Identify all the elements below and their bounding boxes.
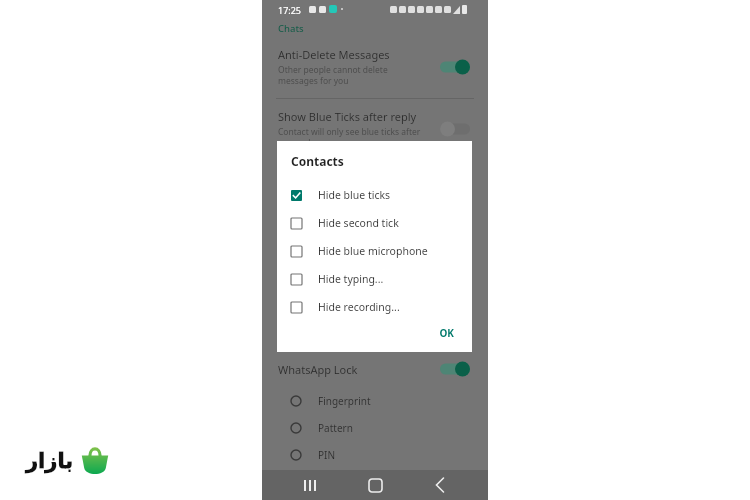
button[interactable]: Hide blue microphone bbox=[277, 237, 472, 265]
button[interactable]: Hide typing... bbox=[277, 265, 472, 293]
button[interactable]: WhatsApp Lock bbox=[262, 360, 488, 378]
staticText: PIN bbox=[318, 448, 336, 462]
button[interactable]: Back bbox=[423, 470, 457, 500]
staticText: Contact will only see blue ticks after y… bbox=[278, 126, 421, 148]
button[interactable]: Toggle on bbox=[438, 58, 472, 76]
staticText: Show Blue Ticks after reply bbox=[278, 109, 417, 124]
staticText: Contacts bbox=[291, 153, 344, 169]
button[interactable]: Toggle off bbox=[438, 120, 472, 138]
staticText: بازار bbox=[26, 449, 74, 473]
staticText: WhatsApp Lock bbox=[278, 362, 438, 377]
staticText: OK bbox=[439, 326, 454, 340]
button[interactable]: Fingerprint bbox=[262, 394, 488, 408]
staticText: Other people cannot delete messages for … bbox=[278, 64, 388, 86]
button[interactable]: Hide recording... bbox=[277, 293, 472, 321]
button[interactable]: PIN bbox=[262, 448, 488, 462]
staticText: Pattern bbox=[318, 421, 353, 435]
button[interactable]: OK bbox=[431, 322, 462, 344]
staticText: Fingerprint bbox=[318, 394, 371, 408]
button[interactable]: Toggle on bbox=[438, 360, 472, 378]
staticText: Hide blue ticks bbox=[318, 188, 391, 202]
staticText: Hide typing... bbox=[318, 272, 384, 286]
button[interactable]: Recents bbox=[293, 470, 327, 500]
staticText: Chats bbox=[278, 22, 304, 35]
button[interactable]: Hide second tick bbox=[277, 209, 472, 237]
button[interactable]: Hide blue ticks bbox=[277, 181, 472, 209]
button[interactable]: Show Blue Ticks after reply bbox=[262, 109, 488, 148]
staticText: Anti-Delete Messages bbox=[278, 47, 390, 62]
button[interactable]: Pattern bbox=[262, 421, 488, 435]
button[interactable]: Home bbox=[358, 470, 392, 500]
staticText: Hide blue microphone bbox=[318, 244, 428, 258]
staticText: Hide recording... bbox=[318, 300, 400, 314]
staticText: Hide second tick bbox=[318, 216, 399, 230]
button[interactable]: Anti-Delete Messages bbox=[262, 47, 488, 86]
staticText: 17:25 bbox=[278, 4, 302, 16]
button[interactable]: Cafe Bazaar bbox=[10, 430, 126, 492]
